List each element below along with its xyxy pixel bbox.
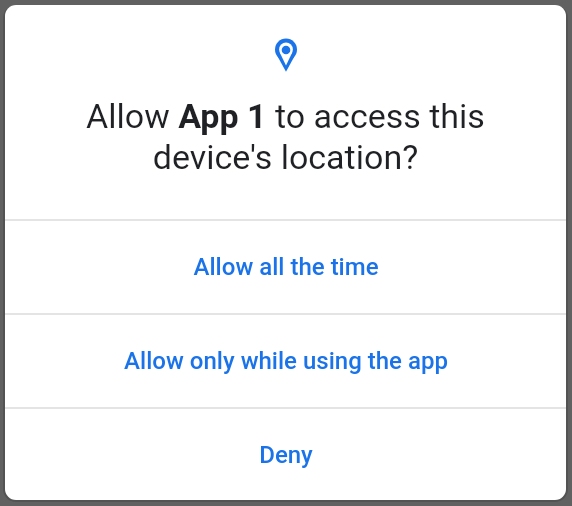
staticText: Allow App 1 to access this device's loca…: [5, 96, 566, 178]
button[interactable]: Deny: [5, 409, 566, 500]
staticText: Allow only while using the app: [124, 347, 448, 375]
button[interactable]: Allow only while using the app: [5, 315, 566, 407]
staticText: Deny: [259, 441, 313, 469]
button[interactable]: Allow all the time: [5, 221, 566, 313]
staticText: Allow all the time: [193, 253, 379, 281]
